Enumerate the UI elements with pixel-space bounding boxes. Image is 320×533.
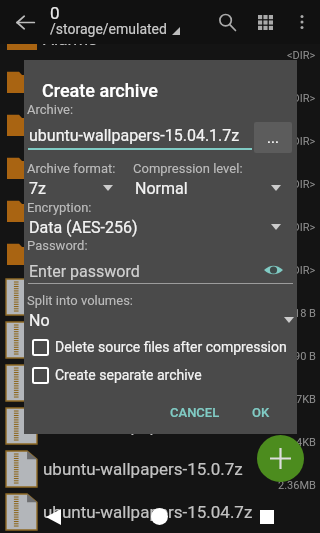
staticText: 18 B — [294, 307, 316, 320]
staticText: Pictures — [43, 373, 106, 393]
staticText: Archive format: — [27, 161, 116, 176]
staticText: Movies — [43, 244, 98, 264]
button[interactable]: Pictures — [0, 361, 320, 404]
button[interactable]: Add — [257, 435, 304, 482]
staticText: ... — [267, 129, 279, 147]
staticText: Password: — [27, 238, 88, 253]
button[interactable]: Movies — [0, 232, 320, 275]
button[interactable]: Recent apps — [213, 500, 320, 533]
button[interactable]: Download — [0, 189, 320, 232]
staticText: <DIR> — [287, 49, 316, 62]
button[interactable]: Normal — [135, 178, 281, 198]
staticText: <DIR> — [287, 221, 316, 234]
button[interactable]: Android — [0, 60, 320, 103]
button[interactable]: No — [29, 310, 294, 330]
staticText: ubuntu-wallpapers-15.04.7z — [43, 502, 253, 522]
button[interactable]: Data (AES-256) — [29, 217, 281, 237]
button[interactable]: Switch to grid view — [246, 0, 284, 44]
staticText: Android — [43, 72, 103, 92]
button[interactable]: Delete source files after compression — [28, 335, 301, 359]
staticText: Alarms — [43, 29, 97, 49]
button[interactable]: Show password — [264, 263, 283, 277]
staticText: /storage/emulated — [50, 21, 167, 37]
staticText: 7z — [29, 179, 103, 198]
button[interactable]: ubuntu-wallpapers-15.04.1.7z — [0, 404, 320, 447]
button[interactable]: Create separate archive — [28, 363, 301, 387]
button[interactable]: Alarms — [0, 17, 320, 60]
staticText: 0 — [50, 3, 60, 23]
staticText: Delete source files after compression — [55, 339, 287, 355]
staticText: Download — [43, 201, 119, 221]
staticText: 2.36MB — [278, 479, 316, 492]
button[interactable]: Back — [0, 500, 106, 533]
staticText: Data (AES-256) — [29, 218, 271, 237]
button[interactable]: Documents — [0, 146, 320, 189]
staticText: Notifications — [43, 330, 140, 350]
staticText: Enter password — [29, 262, 140, 281]
button[interactable]: ubuntu-wallpapers-15.0.7z — [0, 447, 320, 490]
button[interactable]: CANCEL — [164, 397, 226, 427]
staticText: 4KB — [296, 436, 316, 449]
staticText: Music — [43, 287, 90, 307]
staticText: ubuntu-wallpapers-15.04.1.7z — [43, 416, 267, 436]
staticText: 90 B — [294, 350, 316, 363]
staticText: DCIM — [43, 115, 85, 135]
staticText: Archive: — [27, 102, 74, 117]
button[interactable]: Notifications — [0, 318, 320, 361]
staticText: No — [29, 311, 284, 330]
staticText: Create separate archive — [55, 367, 202, 383]
staticText: ubuntu-wallpapers-15.0.7z — [43, 459, 243, 479]
button[interactable]: More options — [284, 0, 320, 44]
staticText: Split into volumes: — [27, 293, 134, 308]
button[interactable]: ubuntu-wallpapers-15.04.7z — [0, 490, 320, 533]
staticText: <DIR> — [287, 178, 316, 191]
staticText: OK — [252, 405, 270, 420]
button[interactable]: Music — [0, 275, 320, 318]
button[interactable]: Search — [208, 0, 246, 44]
button[interactable]: Choose file — [254, 122, 292, 153]
button[interactable]: 7z — [29, 178, 113, 198]
staticText: Encryption: — [27, 200, 92, 215]
staticText: Normal — [135, 179, 271, 198]
button[interactable]: DCIM — [0, 103, 320, 146]
button[interactable]: Navigate up — [0, 0, 50, 44]
staticText: Create archive — [42, 80, 158, 101]
button[interactable]: Home — [106, 500, 213, 533]
staticText: CANCEL — [170, 405, 220, 420]
staticText: <DIR> — [287, 135, 316, 148]
staticText: ubuntu-wallpapers-15.04.1.7z — [29, 126, 240, 145]
staticText: Documents — [43, 158, 130, 178]
staticText: <DIR> — [287, 264, 316, 277]
staticText: Compression level: — [133, 161, 243, 176]
staticText: 7KB — [296, 393, 316, 406]
staticText: <DIR> — [287, 92, 316, 105]
button[interactable]: OK — [242, 397, 280, 427]
